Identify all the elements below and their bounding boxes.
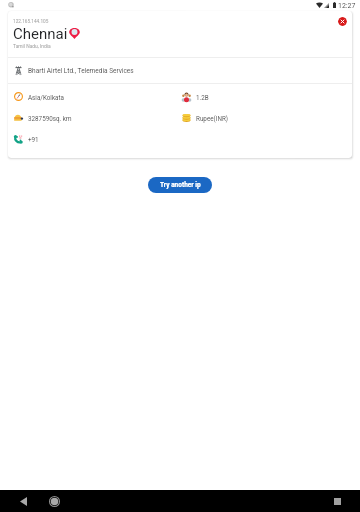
staticText: 12:27 [338,2,356,10]
staticText: Asia/Kolkata [28,94,65,101]
button[interactable]: Asia/Kolkata [8,87,182,108]
button[interactable]: +91 [8,129,182,150]
staticText: Bharti Airtel Ltd., Telemedia Services [28,67,134,75]
staticText: Chennai [13,25,68,43]
staticText: Tamil Nadu, India [13,43,51,49]
staticText: 3287590sq. km [28,115,72,122]
button[interactable]: 3287590sq. km [8,108,182,129]
button[interactable]: 1.2B [182,87,209,108]
button[interactable]: Close [338,17,347,26]
button[interactable]: Home [46,493,63,510]
button[interactable]: Back [15,493,32,510]
button[interactable]: Rupee(INR) [182,108,228,129]
staticText: +91 [28,136,39,143]
staticText: 122.165.144.105 [13,19,49,25]
button[interactable]: Try another ip [148,177,212,193]
staticText: Try another ip [160,181,201,189]
staticText: 1.2B [196,94,209,101]
button[interactable]: Recent apps [329,493,346,510]
staticText: Rupee(INR) [196,115,228,122]
